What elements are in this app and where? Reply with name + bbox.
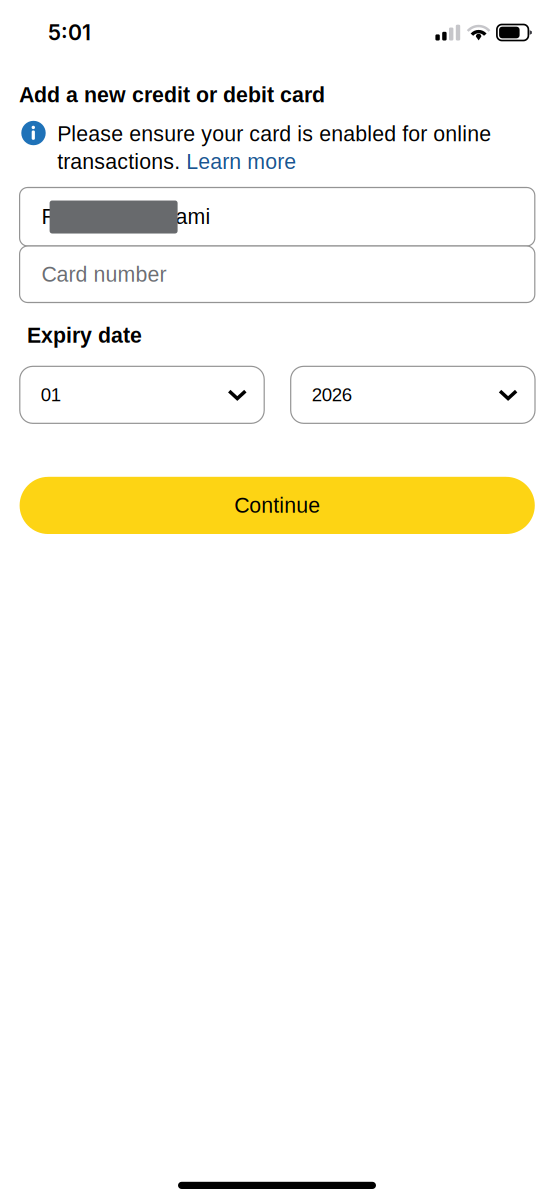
staticText: ami: [176, 205, 211, 228]
button[interactable]: 2026: [291, 366, 535, 423]
button[interactable]: R: [20, 187, 535, 246]
staticText: Expiry date: [27, 323, 142, 347]
button[interactable]: Learn more: [186, 150, 296, 173]
staticText: 2026: [312, 384, 352, 405]
staticText: Card number: [42, 262, 167, 286]
staticText: Please ensure your card is enabled for o…: [57, 122, 491, 146]
staticText: R: [42, 205, 57, 228]
button[interactable]: Card number: [20, 246, 535, 302]
staticText: Continue: [234, 493, 320, 517]
staticText: Learn more: [186, 150, 296, 173]
staticText: 01: [41, 384, 61, 405]
button[interactable]: Continue: [20, 477, 535, 534]
staticText: 5:01: [48, 20, 91, 45]
staticText: Add a new credit or debit card: [19, 83, 325, 107]
button[interactable]: 01: [20, 366, 264, 423]
staticText: transactions.: [57, 150, 186, 173]
